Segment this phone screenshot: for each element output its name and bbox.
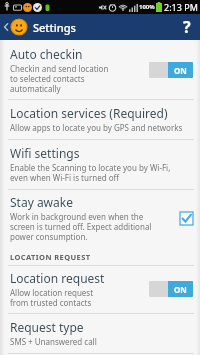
button[interactable]: Location services (Required) [0,100,200,139]
staticText: Auto checkin [10,46,83,62]
staticText: 2:13 PM [164,1,198,13]
staticText: 100% [139,3,155,11]
button[interactable]: Location request [0,266,200,313]
staticText: LOCATION REQUEST [10,252,91,262]
staticText: Allow location request from trusted cont… [10,287,94,308]
staticText: Checkin and send location to selected co… [10,63,109,94]
staticText: SMS + Unanswered call [10,336,97,347]
staticText: ? [183,16,191,38]
staticText: Settings [33,20,76,35]
staticText: Work in background even when the screen … [10,211,152,242]
button[interactable]: Auto checkin [0,42,200,99]
staticText: ON [174,65,187,76]
staticText: Stay awake [10,194,73,210]
staticText: Location request [10,270,105,286]
staticText: Location services (Required) [10,105,168,121]
staticText: ON [174,284,187,295]
button[interactable]: Navigate up [0,14,31,40]
button[interactable]: Stay awake [0,190,200,247]
button[interactable]: Help [174,14,200,40]
staticText: Enable the Scanning to locate you by Wi-… [10,162,171,183]
button[interactable]: Wifi settings [0,140,200,189]
button[interactable]: Request type [0,314,200,353]
staticText: Wifi settings [10,145,80,161]
staticText: Allow apps to locate you by GPS and netw… [10,122,183,133]
staticText: Request type [10,319,84,335]
